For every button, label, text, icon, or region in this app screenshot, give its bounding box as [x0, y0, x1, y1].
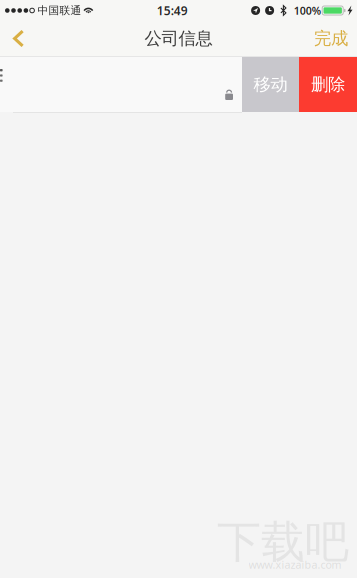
button[interactable]: 删除 — [299, 57, 357, 112]
staticText: 下载吧 — [217, 515, 349, 569]
staticText: 完成 — [314, 28, 348, 49]
staticText: 公司信息 — [144, 28, 212, 49]
staticText: 移动 — [253, 74, 287, 95]
button[interactable]: Back — [0, 21, 36, 56]
staticText: www.xiazaiba.com — [248, 557, 341, 572]
button[interactable]: 移动 — [242, 57, 299, 112]
staticText: 100% — [294, 3, 321, 18]
button[interactable]: 完成 — [303, 21, 357, 56]
staticText: 15:49 — [157, 2, 188, 18]
staticText: 删除 — [311, 74, 345, 95]
staticText: 中国联通 — [37, 4, 81, 17]
